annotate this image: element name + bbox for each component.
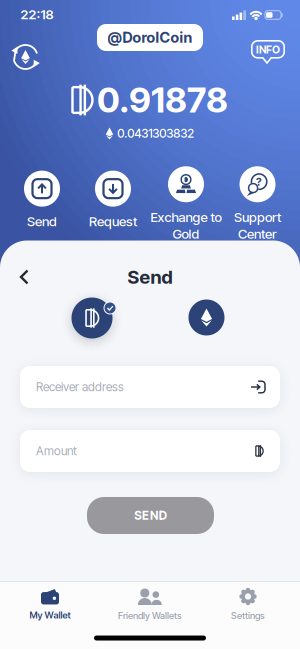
- button[interactable]: Receiver address: [20, 366, 280, 408]
- staticText: Gold: [172, 226, 199, 242]
- staticText: Receiver address: [36, 380, 124, 394]
- button[interactable]: Settings: [203, 584, 293, 624]
- staticText: Support: [234, 209, 281, 225]
- button[interactable]: Exchange to: [150, 166, 221, 242]
- button[interactable]: Back: [11, 262, 36, 291]
- button[interactable]: DorolCoin: [69, 295, 115, 341]
- button[interactable]: My Wallet: [5, 584, 95, 624]
- staticText: 22:18: [20, 7, 53, 22]
- button[interactable]: Info: [251, 40, 285, 65]
- staticText: My Wallet: [29, 609, 70, 620]
- staticText: Settings: [231, 610, 265, 621]
- staticText: Request: [89, 214, 137, 229]
- button[interactable]: SEND: [87, 497, 214, 534]
- staticText: Send: [27, 214, 57, 229]
- staticText: INFO: [256, 43, 280, 56]
- staticText: SEND: [134, 508, 167, 523]
- button[interactable]: Request: [89, 171, 137, 229]
- staticText: Send: [127, 266, 172, 288]
- staticText: Exchange to: [150, 209, 221, 225]
- button[interactable]: @DorolCoin: [97, 24, 203, 51]
- button[interactable]: ?: [234, 166, 281, 242]
- button[interactable]: Refresh: [11, 42, 40, 71]
- staticText: @DorolCoin: [107, 29, 192, 46]
- staticText: 0.91878: [97, 80, 228, 120]
- button[interactable]: Friendly Wallets: [100, 584, 200, 624]
- staticText: Friendly Wallets: [118, 610, 182, 621]
- button[interactable]: Amount: [20, 430, 280, 472]
- staticText: ?: [256, 176, 262, 188]
- staticText: Amount: [36, 444, 77, 458]
- button[interactable]: Ethereum: [188, 299, 224, 335]
- staticText: 0.0431303832: [117, 126, 194, 141]
- staticText: Center: [238, 226, 277, 242]
- button[interactable]: Send: [24, 171, 60, 229]
